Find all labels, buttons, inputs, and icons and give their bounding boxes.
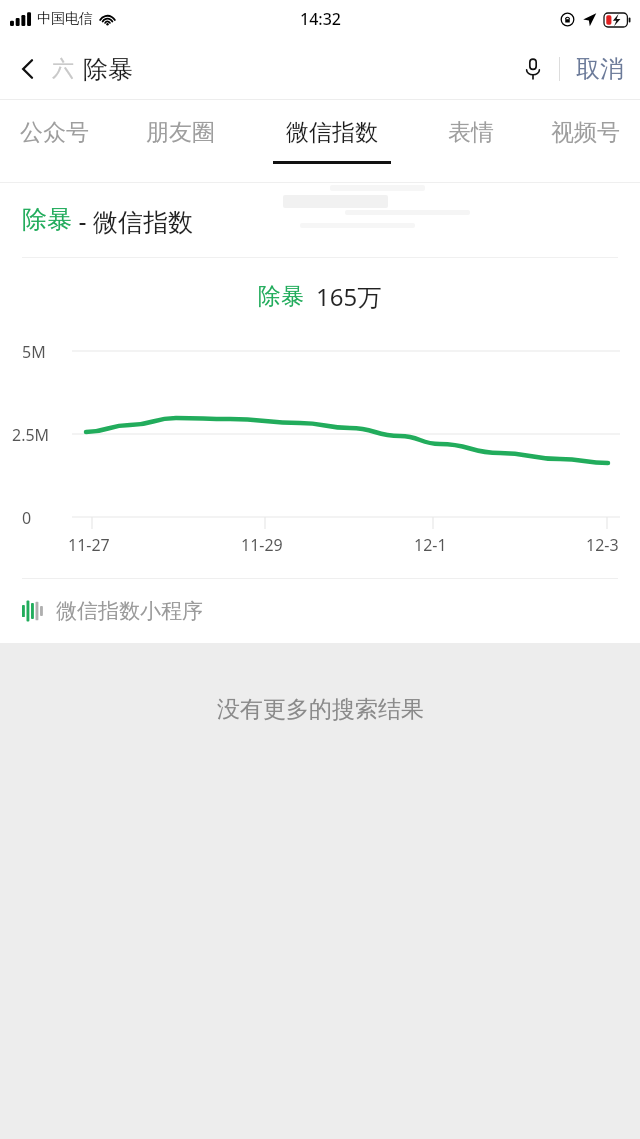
staticText: 14:32	[300, 8, 341, 30]
button[interactable]: 表情	[442, 100, 500, 164]
staticText: 微信指数小程序	[56, 598, 203, 624]
staticText: 0	[22, 507, 32, 529]
button[interactable]: Back	[6, 47, 50, 91]
button[interactable]: 微信指数	[267, 100, 397, 164]
button[interactable]: 微信指数小程序	[0, 579, 640, 643]
staticText: 视频号	[551, 118, 620, 147]
staticText: 没有更多的搜索结果	[217, 695, 424, 724]
staticText: 11-29	[241, 534, 283, 556]
staticText: 165万	[316, 280, 382, 313]
staticText: 六	[52, 55, 74, 83]
staticText: 微信指数	[286, 118, 378, 147]
staticText: 12-3	[586, 534, 619, 556]
staticText: 2.5M	[12, 424, 50, 446]
staticText: 取消	[576, 54, 624, 84]
staticText: 12-1	[414, 534, 447, 556]
button[interactable]: 公众号	[14, 100, 95, 164]
button[interactable]: 朋友圈	[140, 100, 221, 164]
button[interactable]: 视频号	[545, 100, 626, 164]
button[interactable]: Voice search	[511, 47, 555, 91]
staticText: 除暴	[22, 204, 72, 235]
staticText: 11-27	[68, 534, 110, 556]
staticText: 公众号	[20, 118, 89, 147]
staticText: 除暴	[258, 282, 304, 311]
staticText: 除暴	[83, 54, 133, 85]
staticText: 中国电信	[37, 10, 93, 28]
staticText: 朋友圈	[146, 118, 215, 147]
button[interactable]: 取消	[572, 48, 628, 90]
staticText: 表情	[448, 118, 494, 147]
staticText: - 微信指数	[72, 204, 194, 238]
staticText: 5M	[22, 341, 46, 363]
